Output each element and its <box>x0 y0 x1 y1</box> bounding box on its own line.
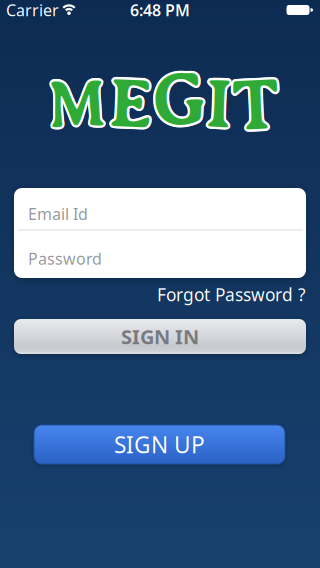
staticText: G <box>155 58 208 141</box>
staticText: E <box>108 67 151 144</box>
staticText: M <box>44 67 109 145</box>
staticText: G <box>150 58 203 141</box>
staticText: M <box>46 67 111 145</box>
staticText: M <box>47 65 112 143</box>
staticText: G <box>151 59 204 142</box>
staticText: T <box>230 65 277 145</box>
staticText: SIGN UP <box>114 429 205 459</box>
staticText: T <box>231 67 278 147</box>
staticText: T <box>233 64 280 144</box>
staticText: T <box>232 62 279 143</box>
staticText: M <box>42 64 107 142</box>
staticText: Forgot Password ? <box>157 283 306 306</box>
staticText: E <box>108 66 151 143</box>
staticText: G <box>155 59 208 143</box>
button[interactable]: Email Id <box>14 188 306 229</box>
staticText: E <box>107 66 150 144</box>
staticText: I <box>203 65 230 143</box>
staticText: E <box>111 62 154 140</box>
staticText: T <box>234 62 281 143</box>
staticText: T <box>232 67 279 148</box>
staticText: G <box>154 55 207 139</box>
button[interactable]: Forgot Password ? <box>157 283 306 306</box>
staticText: I <box>204 63 231 141</box>
staticText: T <box>233 66 280 146</box>
staticText: 6:48 PM <box>130 0 190 21</box>
staticText: M <box>47 64 112 142</box>
staticText: I <box>208 64 235 142</box>
staticText: M <box>43 64 108 142</box>
staticText: T <box>231 64 278 144</box>
staticText: I <box>206 66 233 144</box>
staticText: G <box>151 57 204 140</box>
staticText: M <box>43 67 108 145</box>
staticText: E <box>109 65 152 142</box>
staticText: T <box>235 65 282 145</box>
staticText: M <box>45 66 110 144</box>
staticText: SIGN IN <box>121 323 199 350</box>
staticText: G <box>151 60 204 143</box>
staticText: E <box>108 64 151 141</box>
staticText: I <box>207 63 234 141</box>
staticText: E <box>109 62 152 140</box>
staticText: G <box>152 58 205 141</box>
staticText: I <box>204 64 231 142</box>
staticText: E <box>109 67 152 145</box>
staticText: T <box>231 62 278 143</box>
staticText: G <box>152 60 205 144</box>
staticText: I <box>208 65 235 143</box>
staticText: E <box>110 64 153 141</box>
staticText: M <box>42 66 107 144</box>
staticText: G <box>150 59 203 143</box>
staticText: G <box>151 55 204 139</box>
staticText: T <box>234 67 281 147</box>
staticText: I <box>203 64 230 142</box>
staticText: G <box>153 57 206 140</box>
staticText: E <box>110 66 153 143</box>
staticText: M <box>44 63 109 140</box>
staticText: E <box>112 65 155 142</box>
staticText: T <box>230 66 277 147</box>
staticText: M <box>45 64 110 142</box>
staticText: G <box>150 56 203 140</box>
staticText: E <box>112 66 155 144</box>
staticText: M <box>43 66 108 144</box>
staticText: E <box>107 65 150 142</box>
staticText: T <box>230 63 277 144</box>
staticText: E <box>112 63 155 141</box>
staticText: M <box>43 63 108 141</box>
staticText: I <box>204 66 231 144</box>
staticText: I <box>206 64 233 142</box>
staticText: G <box>153 59 206 142</box>
staticText: G <box>152 55 205 139</box>
staticText: I <box>205 63 232 140</box>
staticText: I <box>204 67 231 145</box>
staticText: I <box>203 66 230 144</box>
button[interactable]: SIGN UP <box>34 425 285 464</box>
staticText: Password <box>28 248 102 269</box>
staticText: G <box>154 60 207 143</box>
staticText: I <box>205 65 232 143</box>
staticText: M <box>42 65 107 143</box>
staticText: I <box>207 67 234 145</box>
staticText: Carrier <box>6 0 59 21</box>
staticText: M <box>44 65 109 143</box>
staticText: T <box>231 66 278 146</box>
staticText: M <box>46 63 111 141</box>
button[interactable]: SIGN IN <box>14 319 306 354</box>
button[interactable]: Password <box>14 188 306 235</box>
staticText: E <box>111 67 154 144</box>
staticText: T <box>235 66 282 147</box>
staticText: E <box>107 63 150 141</box>
staticText: T <box>232 65 279 145</box>
staticText: I <box>205 67 232 145</box>
staticText: G <box>155 56 208 140</box>
staticText: T <box>235 63 282 144</box>
staticText: M <box>47 66 112 144</box>
staticText: I <box>208 66 235 144</box>
staticText: E <box>108 62 151 140</box>
staticText: Email Id <box>28 203 88 224</box>
